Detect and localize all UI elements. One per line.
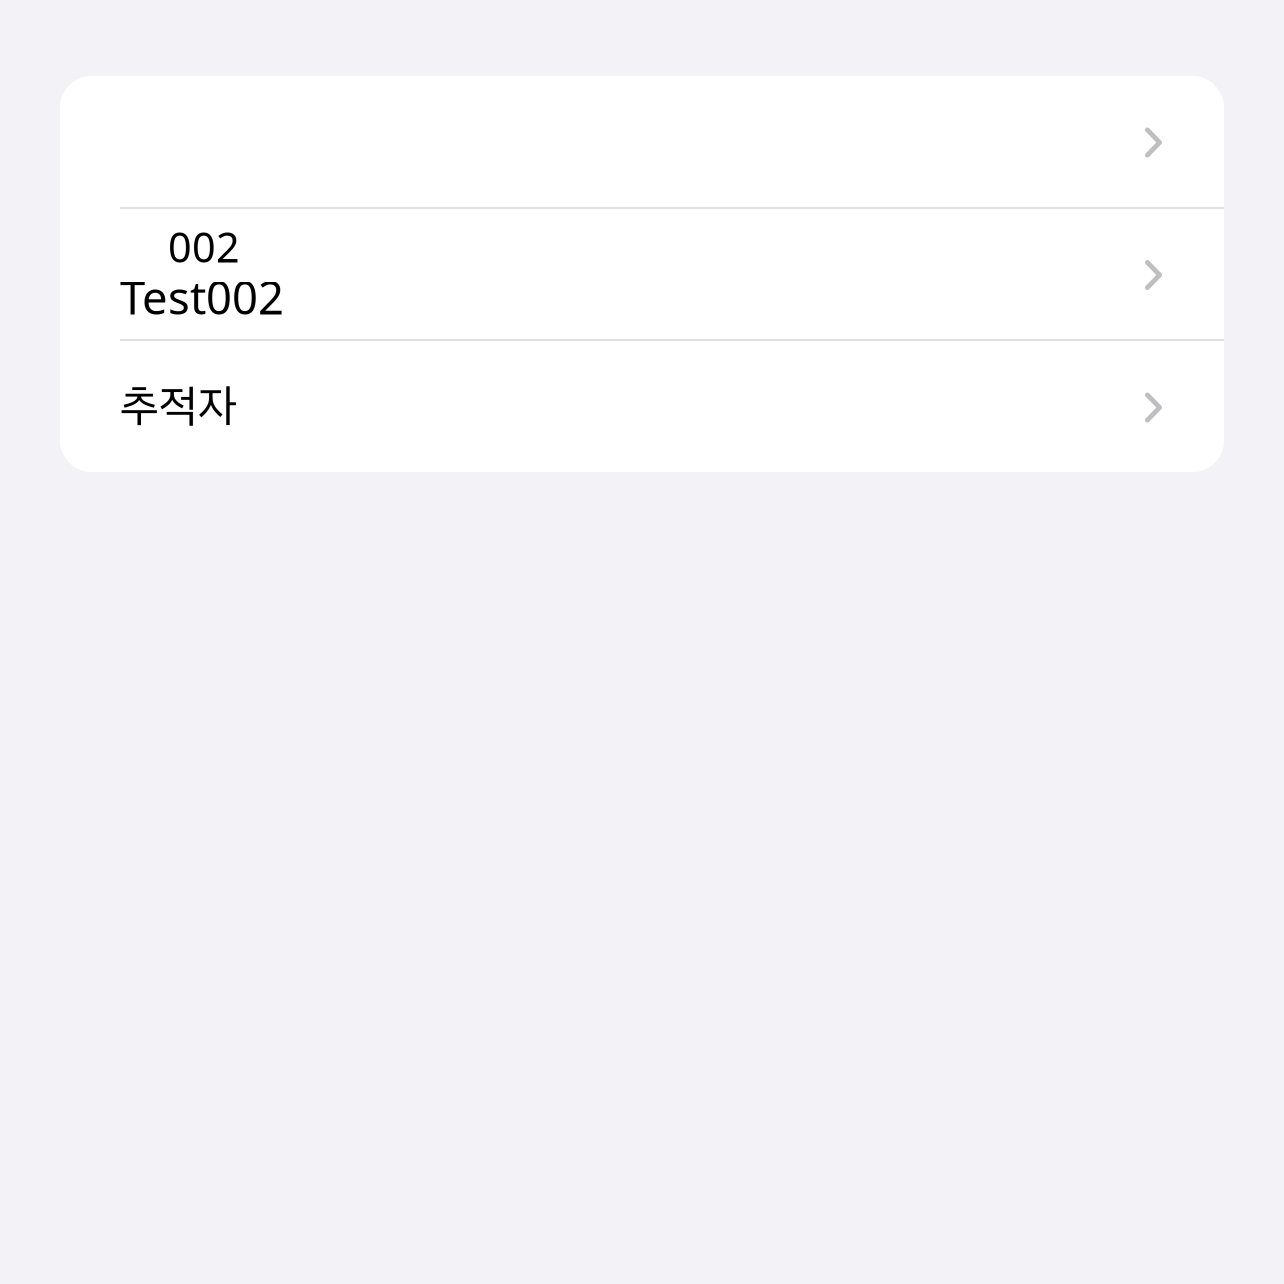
- staticText: Test002: [120, 267, 284, 327]
- staticText: 추적자: [120, 379, 237, 433]
- staticText: 002: [168, 219, 240, 274]
- button[interactable]: 002: [60, 209, 1224, 339]
- button[interactable]: 추적자: [60, 341, 1224, 472]
